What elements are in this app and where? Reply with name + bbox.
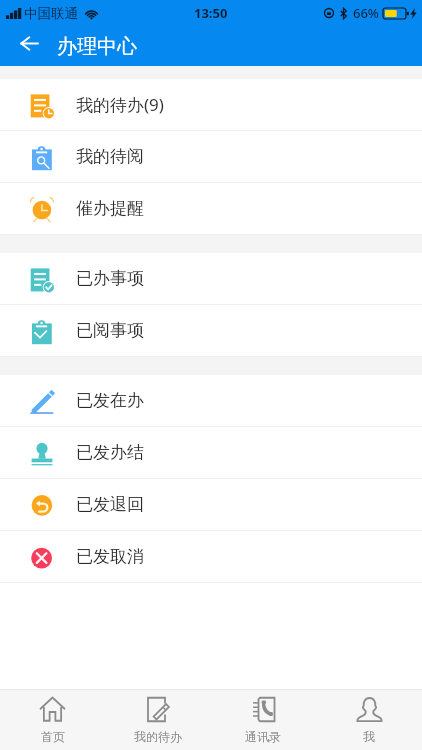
- staticText: 66%: [353, 4, 379, 22]
- button[interactable]: Back: [10, 27, 48, 65]
- staticText: 已发在办: [76, 390, 144, 411]
- button[interactable]: 我的待办: [105, 690, 210, 750]
- staticText: 通讯录: [245, 729, 281, 744]
- button[interactable]: 我的待办(9): [0, 79, 422, 130]
- staticText: 已阅事项: [76, 320, 144, 341]
- button[interactable]: 我的待阅: [0, 131, 422, 182]
- button[interactable]: 我: [316, 690, 422, 750]
- button[interactable]: 通讯录: [210, 690, 316, 750]
- button[interactable]: 催办提醒: [0, 183, 422, 234]
- staticText: 已发办结: [76, 442, 144, 463]
- button[interactable]: 已发取消: [0, 531, 422, 582]
- staticText: 催办提醒: [76, 198, 144, 219]
- staticText: 首页: [41, 729, 65, 744]
- button[interactable]: 已阅事项: [0, 305, 422, 356]
- staticText: 已发取消: [76, 546, 144, 567]
- button[interactable]: 已办事项: [0, 253, 422, 304]
- staticText: 已办事项: [76, 268, 144, 289]
- button[interactable]: 首页: [0, 690, 105, 750]
- button[interactable]: 已发退回: [0, 479, 422, 530]
- staticText: 13:50: [194, 4, 228, 22]
- staticText: 我的待办(9): [76, 93, 164, 116]
- staticText: 中国联通: [24, 5, 78, 22]
- staticText: 我: [363, 729, 375, 744]
- staticText: 办理中心: [57, 34, 137, 59]
- button[interactable]: 已发在办: [0, 375, 422, 426]
- staticText: 我的待办: [134, 729, 182, 744]
- button[interactable]: 已发办结: [0, 427, 422, 478]
- staticText: 已发退回: [76, 494, 144, 515]
- staticText: 我的待阅: [76, 146, 144, 167]
